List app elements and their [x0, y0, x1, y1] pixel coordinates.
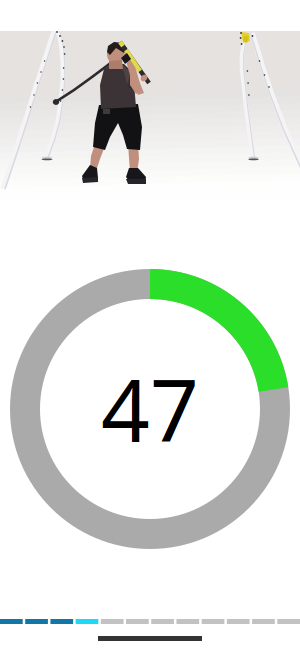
staticText: 47 [101, 352, 199, 466]
